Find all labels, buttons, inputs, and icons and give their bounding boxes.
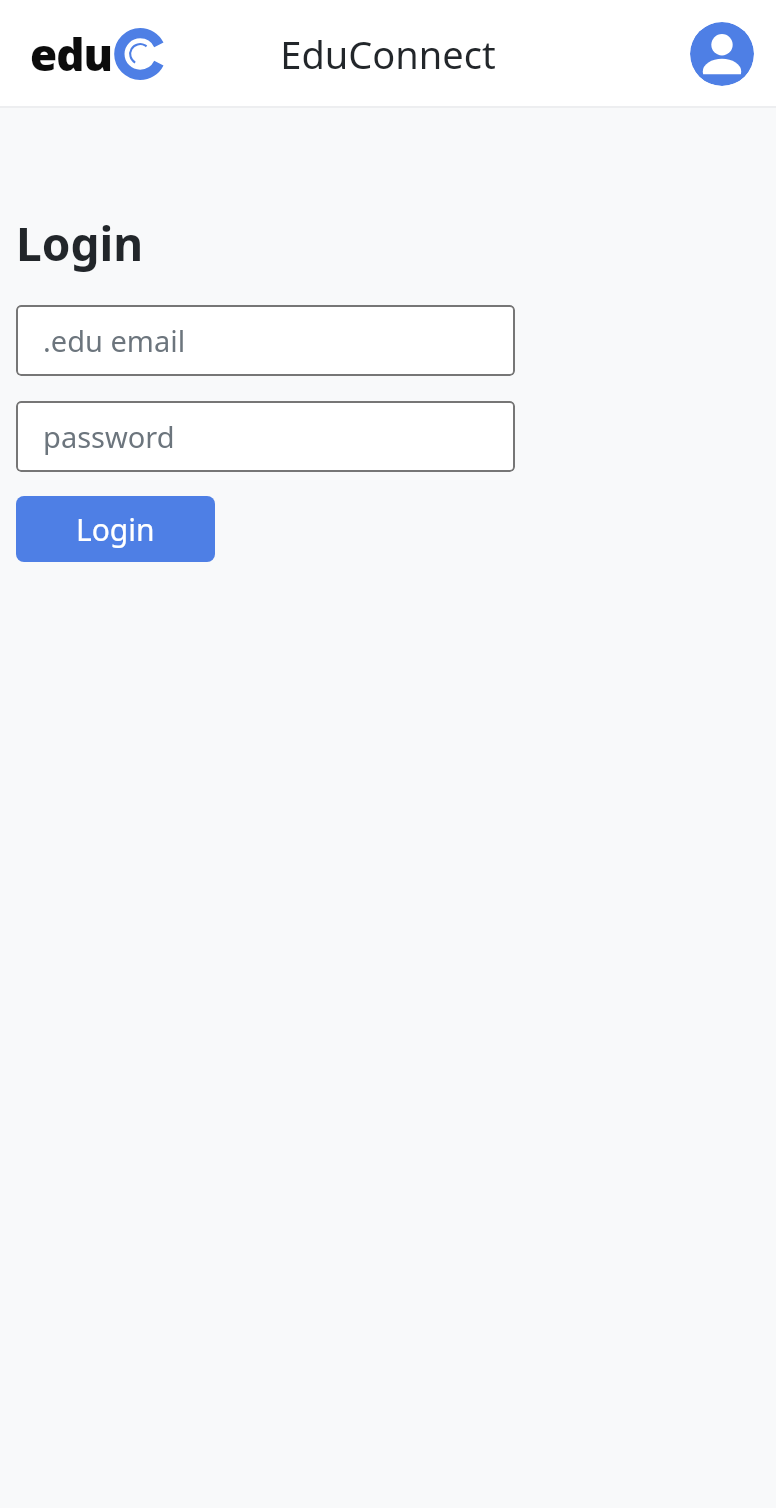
- button[interactable]: password: [16, 401, 515, 472]
- staticText: EduConnect: [280, 28, 496, 80]
- staticText: password: [28, 417, 175, 456]
- button[interactable]: EduConnect logo: [30, 23, 172, 85]
- staticText: Login: [16, 212, 144, 275]
- staticText: Login: [76, 509, 155, 550]
- staticText: .edu email: [28, 321, 186, 360]
- button[interactable]: Login: [16, 496, 215, 562]
- button[interactable]: .edu email: [16, 305, 515, 376]
- button[interactable]: Account: [690, 22, 754, 86]
- staticText: edu: [30, 24, 112, 84]
